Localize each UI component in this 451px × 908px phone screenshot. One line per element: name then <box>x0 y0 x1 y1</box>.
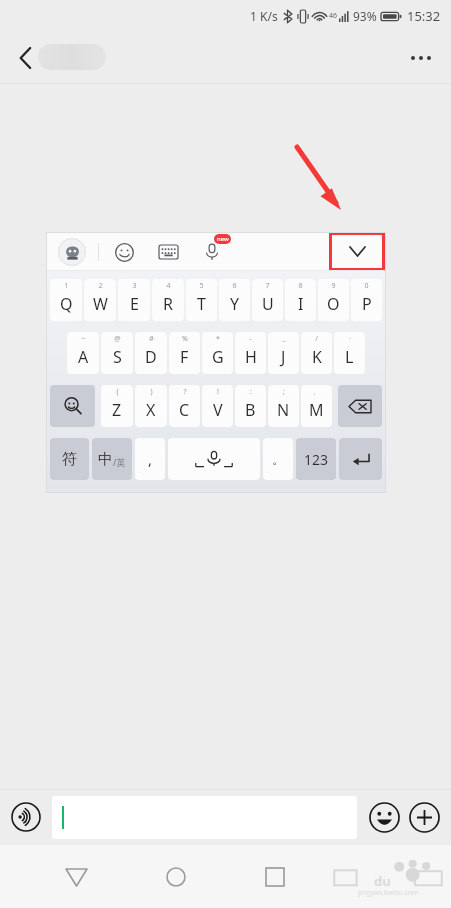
button[interactable]: 2 <box>84 279 116 321</box>
staticText: 1 K/s <box>250 8 278 24</box>
staticText: · <box>349 334 351 344</box>
staticText: 、 <box>313 387 320 396</box>
staticText: F <box>180 346 189 368</box>
staticText: E <box>130 293 139 315</box>
staticText: new <box>217 235 229 243</box>
staticText: 9 <box>331 281 336 291</box>
staticText: @ <box>114 334 121 344</box>
button[interactable]: ! <box>202 385 233 427</box>
button[interactable]: ) <box>135 385 167 427</box>
staticText: H <box>245 346 257 368</box>
button[interactable]: 、 <box>301 385 332 427</box>
staticText: % <box>182 334 188 344</box>
button[interactable]: Hide keyboard <box>329 232 385 271</box>
button[interactable]: Keyboard layout <box>155 239 181 265</box>
button[interactable]: 符 <box>50 438 89 480</box>
button[interactable]: Backspace <box>338 385 382 427</box>
staticText: ) <box>150 387 153 397</box>
button[interactable] <box>168 438 260 480</box>
staticText: ; <box>283 387 285 397</box>
button[interactable]: 0 <box>351 279 382 321</box>
staticText: jingyan.baidu.com <box>358 888 419 898</box>
staticText: L <box>345 346 354 368</box>
staticText: I <box>298 293 304 315</box>
button[interactable]: Back <box>6 38 46 78</box>
button[interactable]: ~ <box>67 332 99 374</box>
staticText: 1 <box>64 281 69 291</box>
staticText: B <box>245 399 256 421</box>
button[interactable]: Home <box>152 853 200 901</box>
staticText: X <box>146 399 156 421</box>
button[interactable]: 5 <box>186 279 217 321</box>
staticText: N <box>277 399 290 421</box>
button[interactable]: · <box>334 332 365 374</box>
staticText: 7 <box>265 281 270 291</box>
button[interactable]: Emoji search <box>50 385 95 427</box>
button[interactable]: 123 <box>296 438 336 480</box>
button[interactable]: 1 <box>50 279 82 321</box>
staticText: 符 <box>62 450 77 469</box>
button[interactable]: # <box>135 332 167 374</box>
staticText: A <box>78 346 89 368</box>
button[interactable]: , <box>135 438 165 480</box>
staticText: 15:32 <box>407 7 441 25</box>
staticText: R <box>163 293 173 315</box>
staticText: 中 <box>98 450 113 469</box>
staticText: - <box>249 334 252 344</box>
staticText: G <box>212 346 224 368</box>
button[interactable]: / <box>301 332 332 374</box>
staticText: 3 <box>132 281 137 291</box>
button[interactable]: : <box>235 385 266 427</box>
staticText: 5 <box>199 281 204 291</box>
staticText: 93% <box>353 8 377 24</box>
button[interactable]: % <box>169 332 200 374</box>
staticText: C <box>179 399 190 421</box>
staticText: Q <box>60 293 73 315</box>
staticText: U <box>262 293 274 315</box>
staticText: 0 <box>364 281 369 291</box>
button[interactable]: ; <box>268 385 299 427</box>
staticText: 。 <box>272 451 285 467</box>
button[interactable]: 7 <box>252 279 283 321</box>
staticText: 4 <box>166 281 171 291</box>
button[interactable]: Enter <box>339 438 382 480</box>
staticText: S <box>113 346 122 368</box>
button[interactable]: ? <box>169 385 200 427</box>
staticText: J <box>281 346 286 368</box>
staticText: ( <box>116 387 119 397</box>
button[interactable]: 9 <box>318 279 349 321</box>
button[interactable]: _ <box>268 332 299 374</box>
button[interactable]: Emoji <box>367 800 401 834</box>
button[interactable]: @ <box>101 332 133 374</box>
button[interactable]: Voice input <box>199 239 225 265</box>
staticText: * <box>216 334 220 344</box>
button[interactable]: 6 <box>219 279 250 321</box>
button[interactable]: Back <box>52 853 100 901</box>
button[interactable]: 。 <box>263 438 293 480</box>
button[interactable]: More <box>407 800 441 834</box>
button[interactable]: 3 <box>118 279 150 321</box>
staticText: D <box>145 346 157 368</box>
button[interactable]: 中 <box>92 438 132 480</box>
button[interactable]: Assistant <box>58 238 86 266</box>
staticText: # <box>149 334 154 344</box>
button[interactable]: 8 <box>285 279 316 321</box>
staticText: 123 <box>304 450 329 469</box>
button[interactable]: - <box>235 332 266 374</box>
button[interactable]: More options <box>399 36 443 80</box>
button[interactable]: 4 <box>152 279 184 321</box>
button[interactable]: Voice message <box>10 801 42 833</box>
staticText: V <box>213 399 223 421</box>
staticText: 2 <box>98 281 103 291</box>
button[interactable]: Recents <box>251 853 299 901</box>
staticText: _ <box>282 334 286 344</box>
button[interactable]: * <box>202 332 233 374</box>
button[interactable] <box>52 796 357 839</box>
staticText: Z <box>112 399 122 421</box>
staticText: O <box>327 293 340 315</box>
button[interactable]: Emoji <box>111 239 137 265</box>
button[interactable]: ( <box>101 385 133 427</box>
staticText: M <box>309 399 324 421</box>
staticText: 6 <box>232 281 237 291</box>
staticText: 46 <box>329 11 338 21</box>
